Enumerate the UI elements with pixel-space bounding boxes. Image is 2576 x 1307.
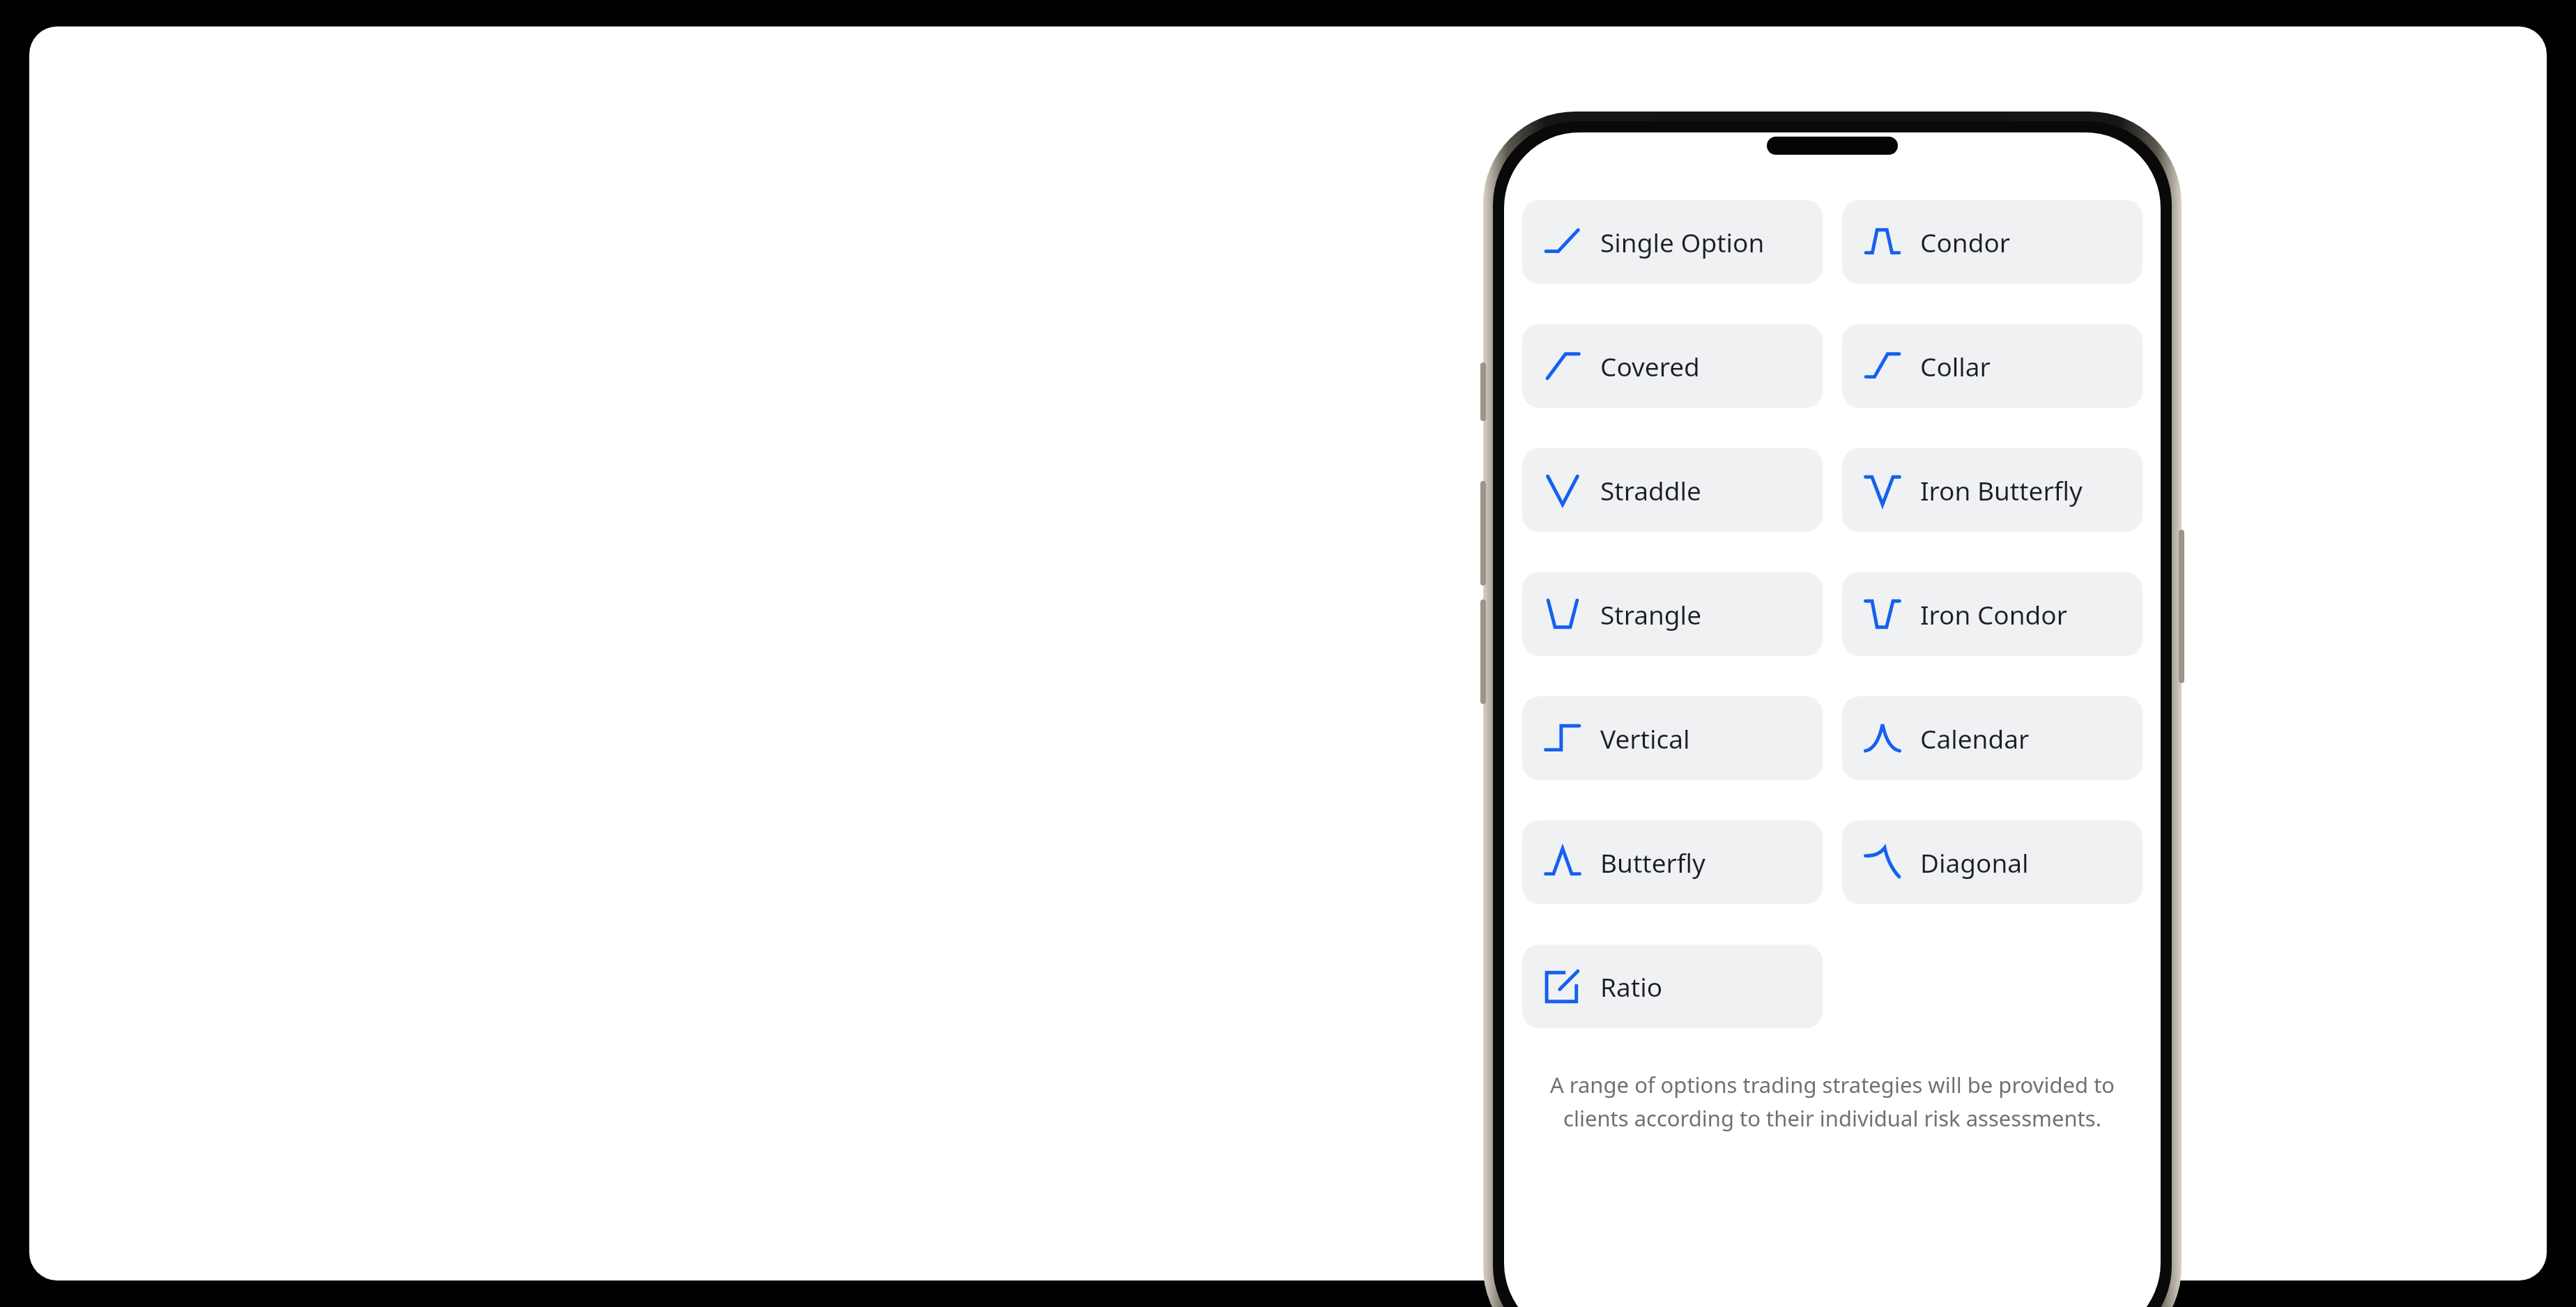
staticText: Ratio <box>1600 969 1663 1004</box>
button[interactable]: Collar <box>1842 324 2142 408</box>
button[interactable]: Volume down <box>1480 599 1486 704</box>
button[interactable]: Ratio <box>1522 945 1823 1028</box>
button[interactable]: Volume up <box>1480 481 1486 586</box>
staticText: Covered <box>1600 349 1700 383</box>
staticText: A range of options trading strategies wi… <box>1526 1070 2138 1133</box>
button[interactable]: Iron Condor <box>1842 572 2142 656</box>
staticText: Diagonal <box>1920 845 2029 880</box>
staticText: Calendar <box>1920 721 2030 756</box>
staticText: Collar <box>1920 349 1991 383</box>
staticText: Condor <box>1920 224 2011 259</box>
button[interactable]: Vertical <box>1522 696 1823 780</box>
button[interactable]: Straddle <box>1522 448 1823 532</box>
staticText: Vertical <box>1600 721 1690 756</box>
staticText: Iron Butterfly <box>1920 473 2083 507</box>
button[interactable]: Mute switch <box>1480 362 1486 421</box>
button[interactable]: Diagonal <box>1842 820 2142 904</box>
staticText: Straddle <box>1600 473 1701 507</box>
button[interactable]: Condor <box>1842 200 2142 284</box>
staticText: Strangle <box>1600 597 1702 632</box>
button[interactable]: Butterfly <box>1522 820 1823 904</box>
button[interactable]: Strangle <box>1522 572 1823 656</box>
button[interactable]: Power <box>2179 530 2184 683</box>
staticText: Iron Condor <box>1920 597 2068 632</box>
staticText: Butterfly <box>1600 845 1705 880</box>
button[interactable]: Calendar <box>1842 696 2142 780</box>
button[interactable]: Single Option <box>1522 200 1823 284</box>
staticText: Single Option <box>1600 224 1765 259</box>
button[interactable]: Covered <box>1522 324 1823 408</box>
button[interactable]: Iron Butterfly <box>1842 448 2142 532</box>
